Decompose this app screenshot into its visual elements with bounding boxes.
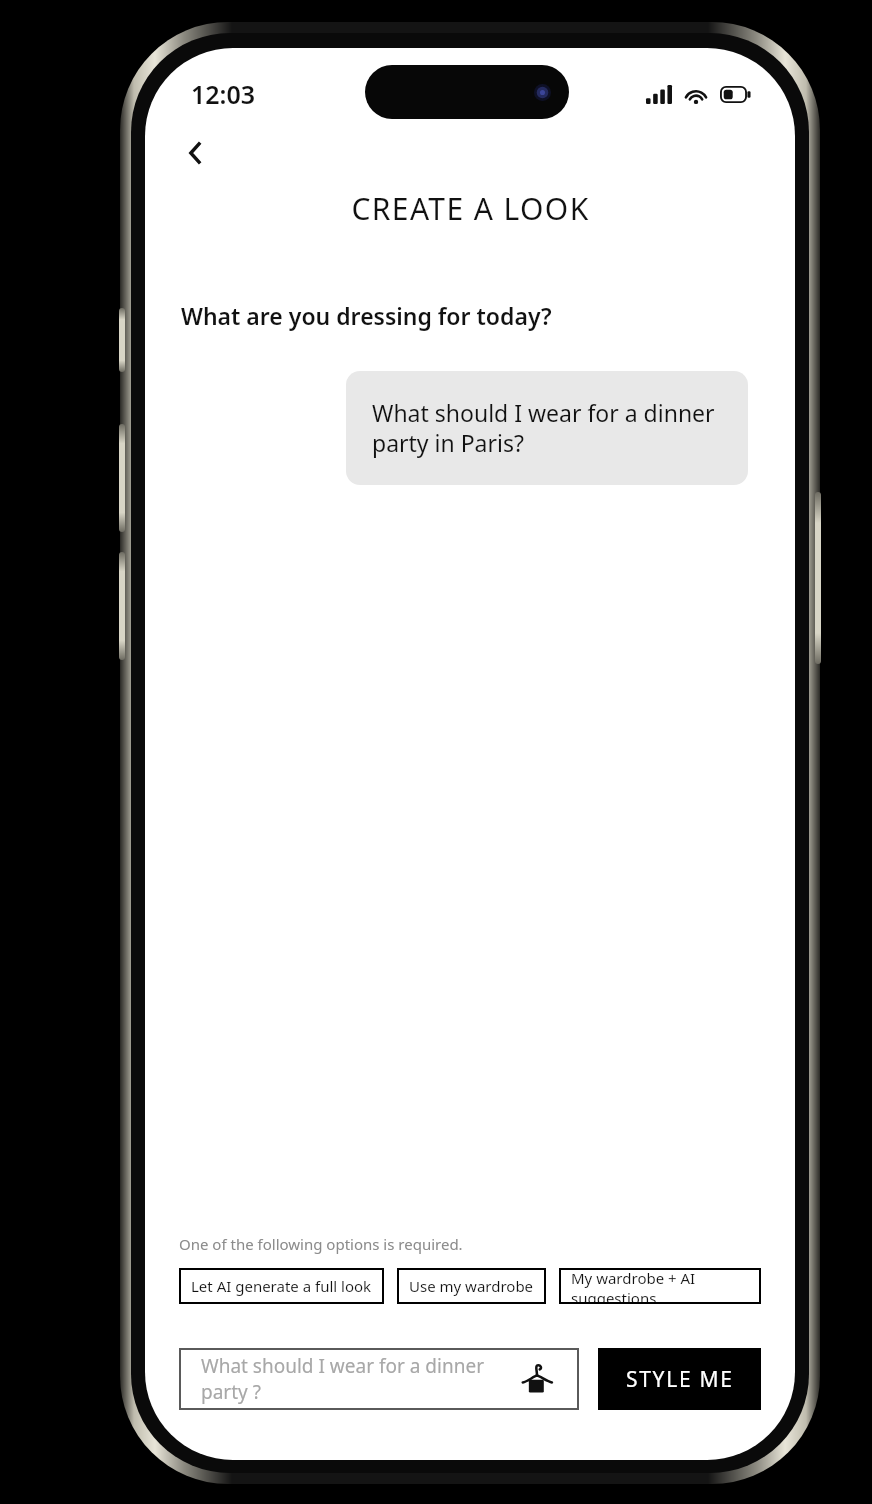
staticText: One of the following options is required…	[179, 1234, 463, 1254]
staticText: 12:03	[191, 77, 256, 111]
staticText: Let AI generate a full look	[191, 1276, 372, 1296]
staticText: What should I wear for a dinner party ?	[201, 1353, 517, 1405]
button[interactable]: STYLE ME	[598, 1348, 761, 1410]
staticText: Use my wardrobe	[409, 1276, 534, 1296]
button[interactable]: What should I wear for a dinner party in…	[346, 371, 748, 485]
button[interactable]: Wardrobe	[517, 1359, 557, 1399]
staticText: What are you dressing for today?	[181, 300, 552, 331]
button[interactable]: Use my wardrobe	[397, 1268, 546, 1304]
staticText: My wardrobe + AI suggestions	[571, 1268, 749, 1304]
button[interactable]: Let AI generate a full look	[179, 1268, 384, 1304]
button[interactable]: My wardrobe + AI suggestions	[559, 1268, 761, 1304]
button[interactable]: What should I wear for a dinner party ?	[179, 1348, 579, 1410]
staticText: CREATE A LOOK	[351, 188, 590, 229]
staticText: What should I wear for a dinner party in…	[372, 397, 722, 459]
staticText: STYLE ME	[626, 1365, 734, 1394]
button[interactable]: Back	[169, 126, 223, 180]
